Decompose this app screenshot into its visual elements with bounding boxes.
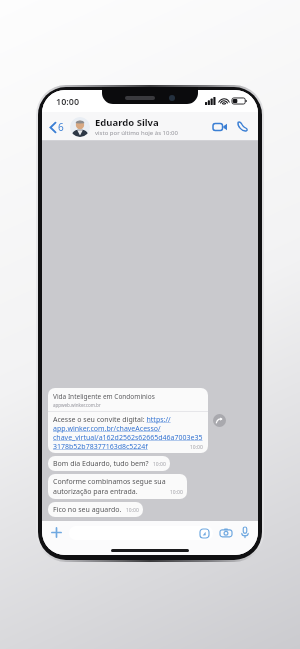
- staticText: Vida Inteligente em Condomínios: [53, 392, 155, 401]
- staticText: 10:00: [170, 489, 183, 496]
- staticText: appweb.winker.com.br: [53, 402, 101, 408]
- button[interactable]: [69, 526, 213, 540]
- button[interactable]: Camera: [218, 526, 234, 540]
- button[interactable]: 6: [48, 117, 66, 137]
- button[interactable]: Add attachment: [49, 525, 64, 540]
- button[interactable]: Vida Inteligente em Condomínios: [48, 388, 208, 453]
- staticText: 10:00: [190, 444, 203, 451]
- staticText: 10:00: [153, 461, 166, 468]
- staticText: 10:00: [126, 507, 139, 514]
- button[interactable]: Fico no seu aguardo.: [48, 502, 143, 517]
- staticText: 6: [58, 120, 64, 134]
- staticText: Eduardo Silva: [95, 116, 159, 129]
- staticText: visto por último hoje às 10:00: [95, 129, 178, 137]
- staticText: Bom dia Eduardo, tudo bem?: [53, 459, 149, 469]
- button[interactable]: Voice call: [233, 117, 252, 136]
- staticText: Conforme combinamos segue sua autorizaçã…: [53, 477, 166, 497]
- staticText: Acesse o seu convite digital: https://ap…: [53, 415, 203, 451]
- button[interactable]: Contact photo: [70, 117, 90, 137]
- button[interactable]: Conforme combinamos segue sua autorizaçã…: [48, 474, 187, 499]
- button[interactable]: Bom dia Eduardo, tudo bem?: [48, 456, 170, 471]
- button[interactable]: Forward message: [213, 414, 226, 427]
- staticText: Fico no seu aguardo.: [53, 505, 122, 515]
- staticText: 10:00: [56, 95, 80, 107]
- button[interactable]: Video call: [209, 118, 231, 136]
- button[interactable]: Voice message: [239, 525, 251, 540]
